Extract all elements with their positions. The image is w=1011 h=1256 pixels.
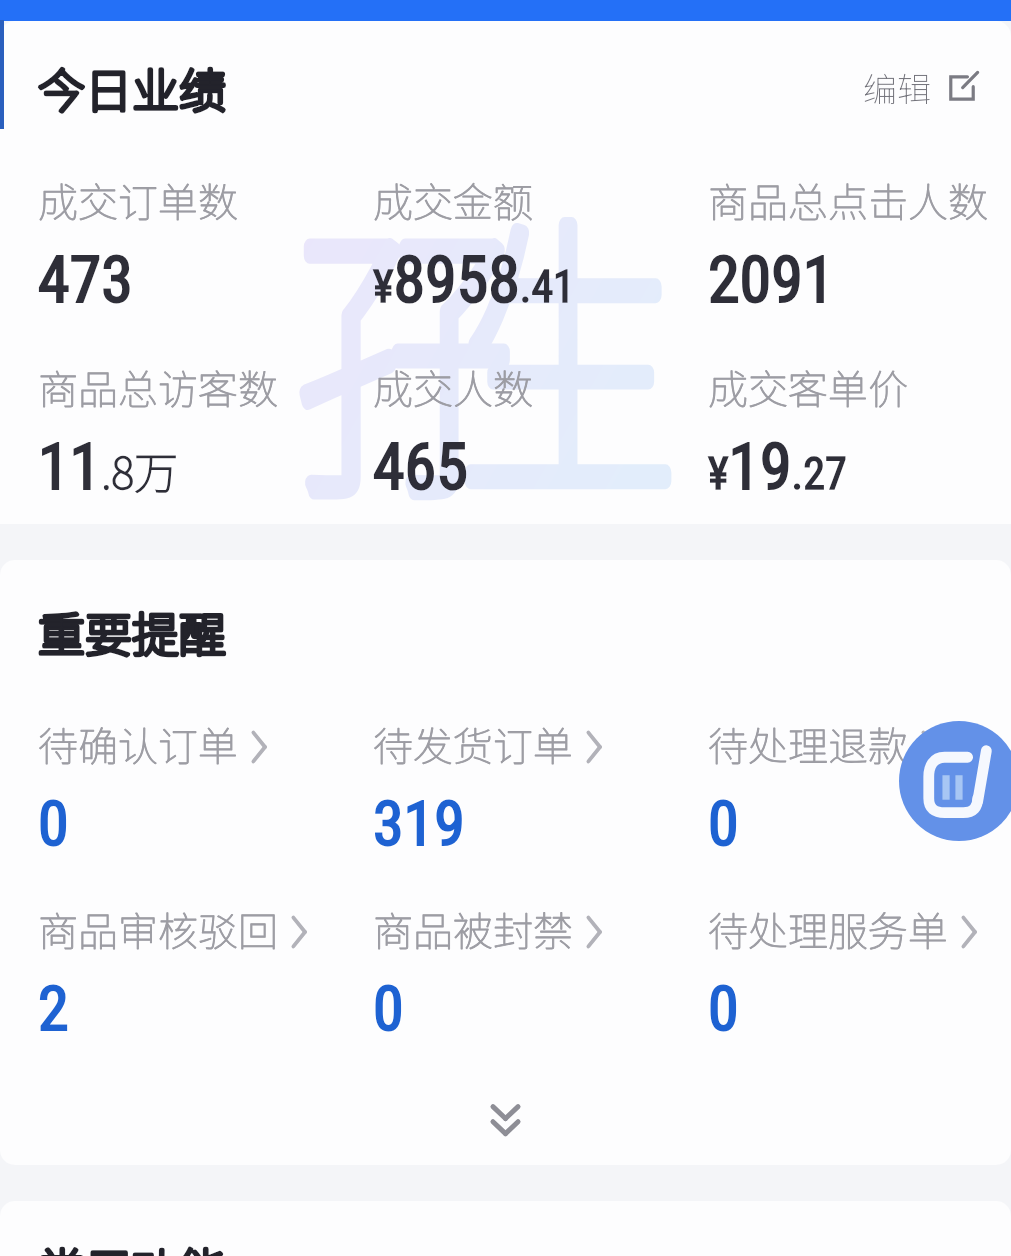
- button[interactable]: 商品被封禁: [373, 900, 708, 1045]
- staticText: 待确认订单: [38, 715, 238, 773]
- staticText: 待发货订单: [373, 715, 573, 773]
- button[interactable]: 待处理退款: [708, 715, 1011, 860]
- staticText: 待处理退款: [708, 715, 908, 773]
- staticText: 待处理退款: [708, 715, 908, 773]
- staticText: 商品审核驳回: [38, 900, 278, 958]
- staticText: 商品被封禁: [373, 900, 573, 958]
- staticText: 商品总访客数: [38, 358, 278, 416]
- staticText: 0: [38, 787, 69, 860]
- staticText: 319: [373, 787, 465, 860]
- staticText: 11.8万: [38, 430, 179, 505]
- staticText: 今日业绩: [38, 53, 226, 121]
- staticText: 商品总点击人数: [708, 171, 988, 229]
- staticText: 成交订单数: [38, 171, 238, 229]
- staticText: 常用功能: [38, 1233, 226, 1256]
- staticText: 孖生: [294, 128, 621, 524]
- staticText: 2091: [708, 243, 835, 318]
- staticText: 商品被封禁: [373, 900, 573, 958]
- staticText: 成交金额: [373, 171, 533, 229]
- button[interactable]: 展开更多: [0, 1077, 1011, 1165]
- button[interactable]: 待发货订单: [373, 715, 708, 860]
- staticText: ¥19.27: [708, 430, 847, 505]
- staticText: 待处理服务单: [708, 900, 948, 958]
- button[interactable]: 编辑: [863, 63, 979, 112]
- staticText: 孖生: [294, 128, 621, 524]
- staticText: 0: [708, 972, 739, 1045]
- button[interactable]: 待处理服务单: [708, 900, 1011, 1045]
- staticText: 0: [373, 972, 404, 1045]
- staticText: 待处理服务单: [708, 900, 948, 958]
- staticText: 商品总访客数: [38, 358, 278, 416]
- staticText: 0: [708, 787, 739, 860]
- staticText: 465: [373, 430, 468, 505]
- staticText: 商品审核驳回: [38, 900, 278, 958]
- staticText: 成交订单数: [38, 171, 238, 229]
- staticText: 成交客单价: [708, 358, 908, 416]
- staticText: 商品总点击人数: [708, 171, 988, 229]
- staticText: 重要提醒: [38, 597, 226, 665]
- staticText: 2: [38, 972, 69, 1045]
- button[interactable]: 商品审核驳回: [38, 900, 373, 1045]
- staticText: 编辑: [863, 63, 931, 112]
- staticText: 473: [38, 243, 133, 318]
- staticText: 常用功能: [38, 1233, 226, 1256]
- staticText: 成交人数: [373, 358, 533, 416]
- staticText: 成交人数: [373, 358, 533, 416]
- staticText: 成交客单价: [708, 358, 908, 416]
- staticText: 成交金额: [373, 171, 533, 229]
- staticText: ¥8958.41: [373, 243, 575, 318]
- button[interactable]: 客服助手: [899, 721, 1011, 841]
- staticText: 重要提醒: [38, 597, 226, 665]
- staticText: 待发货订单: [373, 715, 573, 773]
- button[interactable]: 待确认订单: [38, 715, 373, 860]
- staticText: 待确认订单: [38, 715, 238, 773]
- staticText: 今日业绩: [38, 53, 226, 121]
